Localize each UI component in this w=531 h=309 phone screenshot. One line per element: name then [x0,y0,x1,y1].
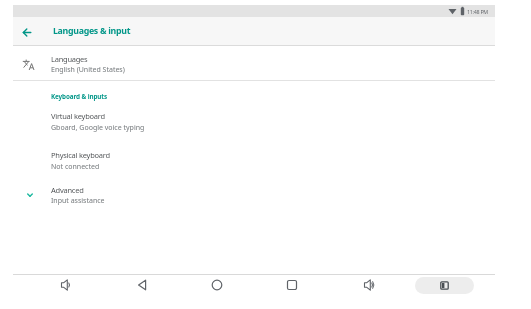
staticText: Advanced [51,185,84,195]
staticText: Languages & input [53,25,131,37]
staticText: Languages [51,54,88,64]
staticText: Not connected [51,162,100,172]
staticText: Physical keyboard [51,150,110,160]
button[interactable]: Advanced [13,180,495,214]
staticText: Gboard, Google voice typing [51,123,145,133]
button[interactable]: Virtual keyboard [13,105,495,141]
staticText: English (United States) [51,65,125,75]
button[interactable] [20,26,34,40]
staticText: Keyboard & inputs [51,92,108,101]
staticText: Input assistance [51,196,105,206]
button[interactable] [284,277,300,293]
staticText: Virtual keyboard [51,111,105,121]
button[interactable]: Languages [13,46,495,80]
button[interactable] [58,277,74,293]
staticText: 11:48 PM [467,8,488,15]
button[interactable]: Physical keyboard [13,145,495,178]
button[interactable] [135,277,151,293]
button[interactable] [415,277,474,294]
button[interactable] [361,277,377,293]
button[interactable] [209,277,225,293]
